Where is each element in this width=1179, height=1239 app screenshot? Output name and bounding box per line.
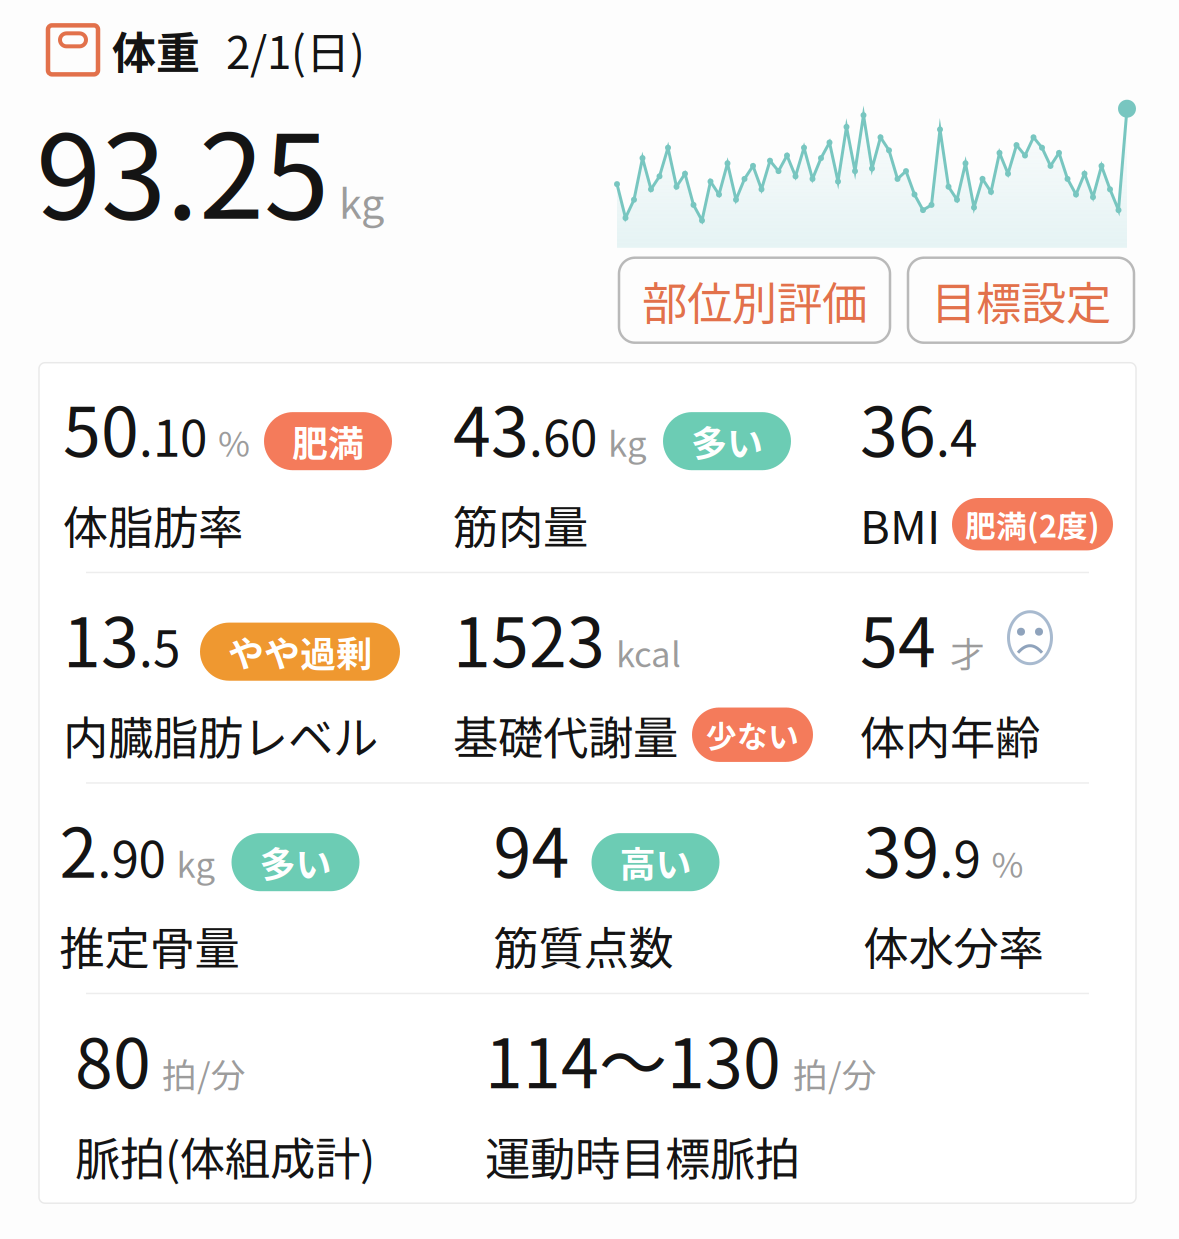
staticText: 93.25 [36,83,329,253]
staticText: 39 [863,799,939,897]
staticText: 少ない [706,712,799,757]
staticText: 50 [63,378,139,476]
staticText: やや過剰 [228,626,372,678]
staticText: 拍/分 [162,1048,246,1098]
staticText: 体水分率 [863,912,1043,978]
staticText: 目標設定 [931,267,1111,333]
staticText: 114〜130 [485,1009,781,1108]
staticText: 2 [59,799,97,897]
staticText: 54 [860,588,936,687]
staticText: 内臓脂肪レベル [63,702,378,767]
staticText: kg [176,838,215,888]
staticText: 運動時目標脈拍 [485,1123,800,1188]
staticText: % [218,417,250,467]
staticText: .5 [139,610,180,681]
staticText: 多い [259,836,331,888]
staticText: 推定骨量 [59,912,239,978]
staticText: 13 [63,588,139,687]
staticText: 80 [75,1009,151,1108]
button[interactable]: 目標設定 [908,258,1134,343]
staticText: 筋質点数 [493,912,673,978]
staticText: kg [608,417,647,467]
staticText: 体内年齢 [860,702,1040,767]
staticText: BMI [860,491,940,557]
staticText: 部位別評価 [642,267,867,333]
staticText: .60 [529,400,597,471]
staticText: 2/1(日) [226,18,365,82]
staticText: 脈拍(体組成計) [75,1123,375,1188]
staticText: 筋肉量 [453,491,588,557]
staticText: 1523 [453,588,605,687]
staticText: .9 [939,821,980,892]
button[interactable]: 部位別評価 [619,258,890,343]
staticText: .4 [936,400,977,471]
staticText: 拍/分 [793,1048,877,1098]
staticText: 94 [493,799,569,897]
staticText: 多い [691,415,763,467]
staticText: kcal [616,627,681,677]
staticText: 43 [453,378,529,476]
staticText: 才 [950,627,985,677]
staticText: .90 [97,821,165,892]
staticText: kg [339,171,384,231]
staticText: % [991,838,1023,888]
staticText: 体脂肪率 [63,491,243,557]
staticText: 肥満 [292,415,364,467]
staticText: 肥満(2度) [965,502,1100,546]
staticText: .10 [139,400,207,471]
staticText: 36 [860,378,936,476]
staticText: 体重 [112,18,200,82]
staticText: 高い [619,836,691,888]
staticText: 基礎代謝量 [453,702,678,767]
